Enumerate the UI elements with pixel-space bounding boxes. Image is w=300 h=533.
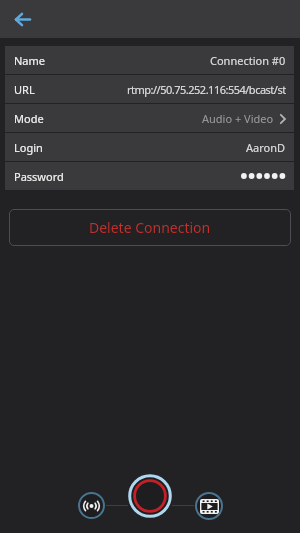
staticText: URL <box>14 82 35 97</box>
button[interactable]: Login <box>5 133 294 161</box>
button[interactable]: Name <box>5 46 294 74</box>
staticText: Password <box>14 169 64 184</box>
staticText: Delete Connection <box>89 218 211 237</box>
button[interactable] <box>195 492 223 520</box>
button[interactable]: Delete Connection <box>9 209 291 246</box>
staticText: Name <box>14 53 46 68</box>
button[interactable]: Password <box>5 162 294 190</box>
staticText: Audio + Video <box>202 111 274 126</box>
staticText: rtmp://50.75.252.116:554/bcast/st <box>127 82 286 97</box>
button[interactable] <box>9 5 37 33</box>
staticText: AaronD <box>246 140 286 155</box>
staticText: Connection #0 <box>210 53 286 68</box>
button[interactable] <box>78 492 105 519</box>
button[interactable]: URL <box>5 75 294 103</box>
staticText: Login <box>14 140 43 155</box>
button[interactable]: Mode <box>5 104 294 132</box>
staticText: Mode <box>14 111 44 126</box>
button[interactable] <box>128 474 172 518</box>
